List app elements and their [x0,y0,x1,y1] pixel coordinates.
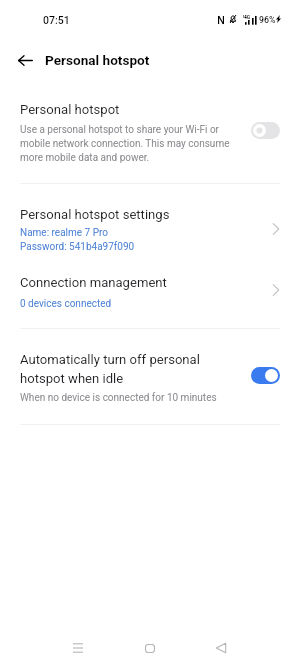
button[interactable]: Turn on [251,122,280,139]
staticText: Use a personal hotspot to share your Wi-… [20,124,230,164]
staticText: 0 devices connected [20,298,112,310]
button[interactable]: Automatically turn off personal hotspot … [0,346,300,408]
button[interactable]: Connection management [0,268,300,316]
button[interactable]: Recent apps [58,628,98,667]
staticText: Automatically turn off personal hotspot … [20,352,200,386]
staticText: 96% [259,15,276,25]
staticText: Name: realme 7 Pro [20,227,108,239]
button[interactable]: Back [9,44,41,76]
staticText: 4G [244,14,251,20]
staticText: Personal hotspot settings [20,207,170,222]
staticText: Password: 541b4a97f090 [20,241,135,253]
staticText: Personal hotspot [45,52,150,68]
staticText: When no device is connected for 10 minut… [20,392,217,404]
staticText: 07:51 [43,14,70,26]
button[interactable]: Turn off [251,367,280,384]
staticText: Personal hotspot [20,102,120,117]
button[interactable]: Back [201,628,241,667]
button[interactable]: Personal hotspot settings [0,200,300,262]
staticText: Connection management [20,275,167,290]
button[interactable]: Personal hotspot [0,96,300,176]
button[interactable]: Home [130,628,170,667]
